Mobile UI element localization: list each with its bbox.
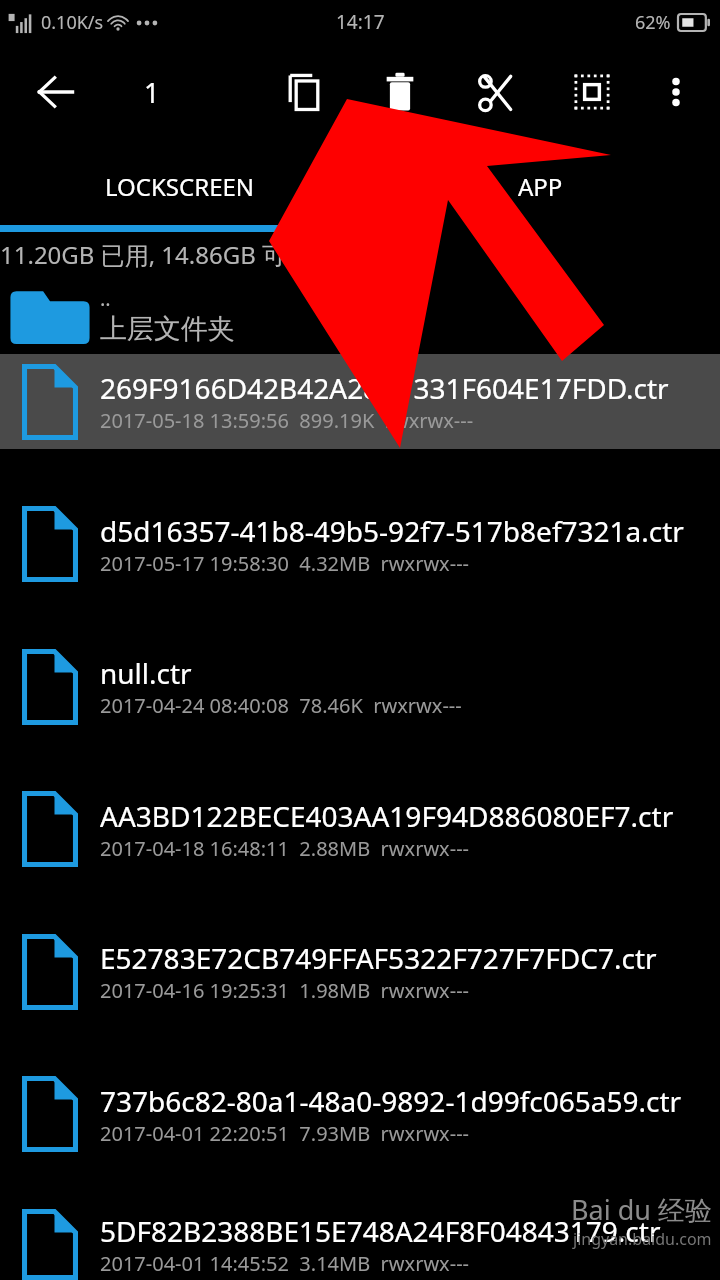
staticText: 2017-04-01 22:20:51 7.93MB rwxrwx---: [100, 1120, 470, 1147]
staticText: 737b6c82-80a1-48a0-9892-1d99fc065a59.ctr: [100, 1082, 682, 1120]
staticText: null.ctr: [100, 654, 192, 692]
staticText: 2017-04-16 19:25:31 1.98MB rwxrwx---: [100, 977, 470, 1004]
staticText: 269F9166D42B42A28B1331F604E17FDD.ctr: [100, 369, 669, 407]
button[interactable]: E52783E72CB749FFAF5322F727F7FDC7.ctr: [0, 924, 720, 1019]
button[interactable]: 269F9166D42B42A28B1331F604E17FDD.ctr: [0, 354, 720, 449]
button[interactable]: Copy: [270, 58, 338, 126]
staticText: 上层文件夹: [100, 312, 235, 346]
button[interactable]: d5d16357-41b8-49b5-92f7-517b8ef7321a.ctr: [0, 449, 720, 639]
button[interactable]: More options: [642, 58, 710, 126]
staticText: 0.10K/s: [41, 10, 104, 35]
staticText: E52783E72CB749FFAF5322F727F7FDC7.ctr: [100, 939, 657, 977]
staticText: 1: [144, 74, 160, 111]
staticText: AA3BD122BECE403AA19F94D886080EF7.ctr: [100, 797, 674, 835]
staticText: LOCKSCREEN: [105, 170, 255, 203]
staticText: d5d16357-41b8-49b5-92f7-517b8ef7321a.ctr: [100, 512, 684, 550]
button[interactable]: Select all: [558, 58, 626, 126]
button[interactable]: LOCKSCREEN: [0, 140, 360, 232]
staticText: 2017-04-18 16:48:11 2.88MB rwxrwx---: [100, 835, 470, 862]
staticText: 5DF82B2388BE15E748A24F8F04843179.ctr: [100, 1212, 661, 1250]
button[interactable]: Back: [22, 58, 90, 126]
button[interactable]: Cut: [462, 58, 530, 126]
staticText: 2017-04-01 14:45:52 3.14MB rwxrwx---: [100, 1250, 470, 1277]
staticText: 2017-04-24 08:40:08 78.46K rwxrwx---: [100, 692, 462, 719]
button[interactable]: 737b6c82-80a1-48a0-9892-1d99fc065a59.ctr: [0, 1019, 720, 1209]
staticText: 2017-05-17 19:58:30 4.32MB rwxrwx---: [100, 550, 470, 577]
staticText: Bai du 经验: [571, 1191, 712, 1228]
button[interactable]: 1: [122, 62, 182, 122]
staticText: 2017-05-18 13:59:56 899.19K rwxrwx---: [100, 407, 474, 434]
staticText: ..: [100, 285, 111, 312]
staticText: 62%: [635, 10, 671, 35]
button[interactable]: AA3BD122BECE403AA19F94D886080EF7.ctr: [0, 734, 720, 924]
button[interactable]: APP: [360, 140, 720, 232]
staticText: APP: [518, 170, 563, 203]
button[interactable]: null.ctr: [0, 639, 720, 734]
staticText: 11.20GB 已用, 14.86GB 可用, 读写: [0, 238, 371, 271]
staticText: 14:17: [336, 9, 385, 35]
button[interactable]: Delete: [366, 58, 434, 126]
staticText: jingyan.baidu.com: [573, 1228, 712, 1250]
button[interactable]: ..: [0, 276, 720, 354]
button[interactable]: 5DF82B2388BE15E748A24F8F04843179.ctr: [0, 1209, 720, 1280]
